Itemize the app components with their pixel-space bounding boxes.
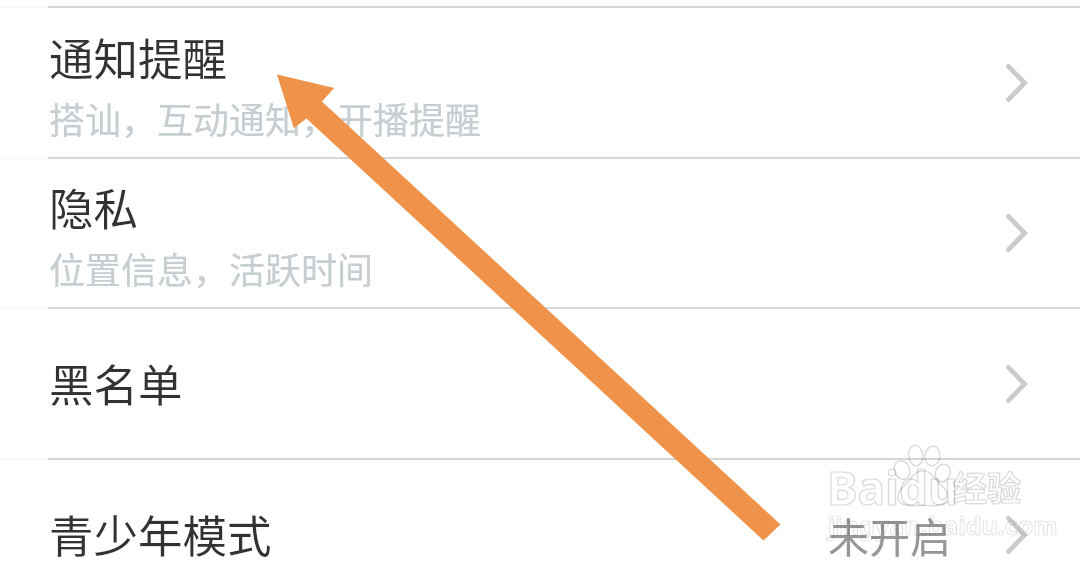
other: 打开青少年模式: [1006, 516, 1027, 554]
button[interactable]: 青少年模式: [0, 460, 1080, 561]
staticText: 经验: [953, 462, 1021, 511]
button[interactable]: 通知提醒: [0, 8, 1080, 157]
staticText: 青少年模式: [49, 501, 272, 561]
button[interactable]: 黑名单: [0, 309, 1080, 458]
staticText: 黑名单: [49, 350, 183, 414]
other: 打开隐私: [1006, 214, 1027, 252]
other: 打开黑名单: [1006, 365, 1027, 403]
staticText: Baidu: [827, 456, 958, 519]
staticText: 位置信息，活跃时间: [49, 242, 374, 294]
staticText: 未开启: [828, 505, 951, 561]
button[interactable]: 隐私: [0, 158, 1080, 307]
other: 打开通知提醒: [1006, 64, 1027, 102]
staticText: 隐私: [49, 174, 139, 238]
staticText: jingyan.baidu.com: [828, 508, 1058, 542]
staticText: 搭讪，互动通知，开播提醒: [49, 92, 482, 144]
staticText: 通知提醒: [49, 24, 228, 88]
